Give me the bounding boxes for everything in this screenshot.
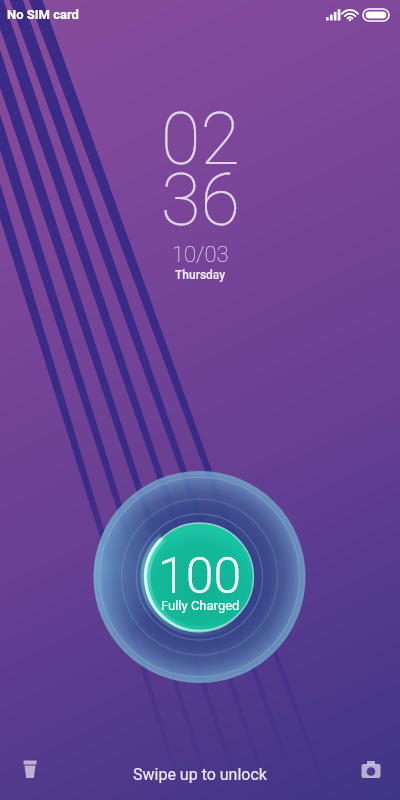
button[interactable]: Camera (355, 754, 387, 786)
staticText: No SIM card (7, 7, 79, 22)
button[interactable]: Flashlight (14, 754, 46, 786)
staticText: 36 (161, 158, 240, 242)
staticText: Thursday (175, 268, 226, 282)
staticText: 02 (161, 97, 240, 181)
staticText: 100 (158, 547, 242, 606)
staticText: Swipe up to unlock (133, 765, 267, 784)
staticText: 10/03 (172, 242, 229, 268)
staticText: Fully Charged (161, 598, 240, 613)
